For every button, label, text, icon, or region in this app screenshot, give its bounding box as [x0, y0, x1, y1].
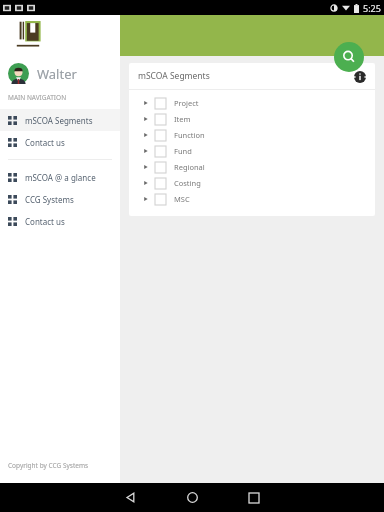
staticText: Contact us [25, 216, 65, 227]
staticText: Costing [174, 178, 201, 188]
button[interactable]: Costing [129, 175, 375, 191]
button[interactable]: CCG Systems [0, 188, 120, 210]
staticText: Contact us [25, 137, 65, 148]
staticText: MAIN NAVIGATION [8, 93, 67, 102]
staticText: mSCOA @ a glance [25, 172, 96, 183]
staticText: Regional [174, 162, 205, 172]
button[interactable]: Search [334, 42, 364, 72]
button[interactable]: Contact us [0, 131, 120, 153]
staticText: Fund [174, 146, 192, 156]
button[interactable]: Contact us [0, 210, 120, 232]
button[interactable]: CCG Systems logo [11, 16, 44, 56]
button[interactable]: Information [353, 70, 366, 83]
button[interactable]: Home [172, 483, 212, 512]
button[interactable]: Regional [129, 159, 375, 175]
button[interactable]: mSCOA Segments [0, 109, 120, 131]
staticText: Project [174, 98, 199, 108]
staticText: Function [174, 130, 205, 140]
button[interactable]: mSCOA @ a glance [0, 166, 120, 188]
staticText: 5:25 [363, 2, 381, 14]
staticText: Copyright by CCG Systems [8, 461, 89, 470]
button[interactable]: Fund [129, 143, 375, 159]
staticText: Walter [37, 65, 77, 83]
staticText: CCG Systems [25, 194, 74, 205]
button[interactable]: Item [129, 111, 375, 127]
button[interactable]: Project [129, 95, 375, 111]
button[interactable]: Back [110, 483, 150, 512]
staticText: mSCOA Segments [138, 70, 210, 82]
staticText: Item [174, 114, 191, 124]
button[interactable]: Recent apps [234, 483, 274, 512]
button[interactable]: MSC [129, 191, 375, 207]
staticText: MSC [174, 194, 190, 204]
staticText: mSCOA Segments [25, 115, 93, 126]
button[interactable]: Function [129, 127, 375, 143]
